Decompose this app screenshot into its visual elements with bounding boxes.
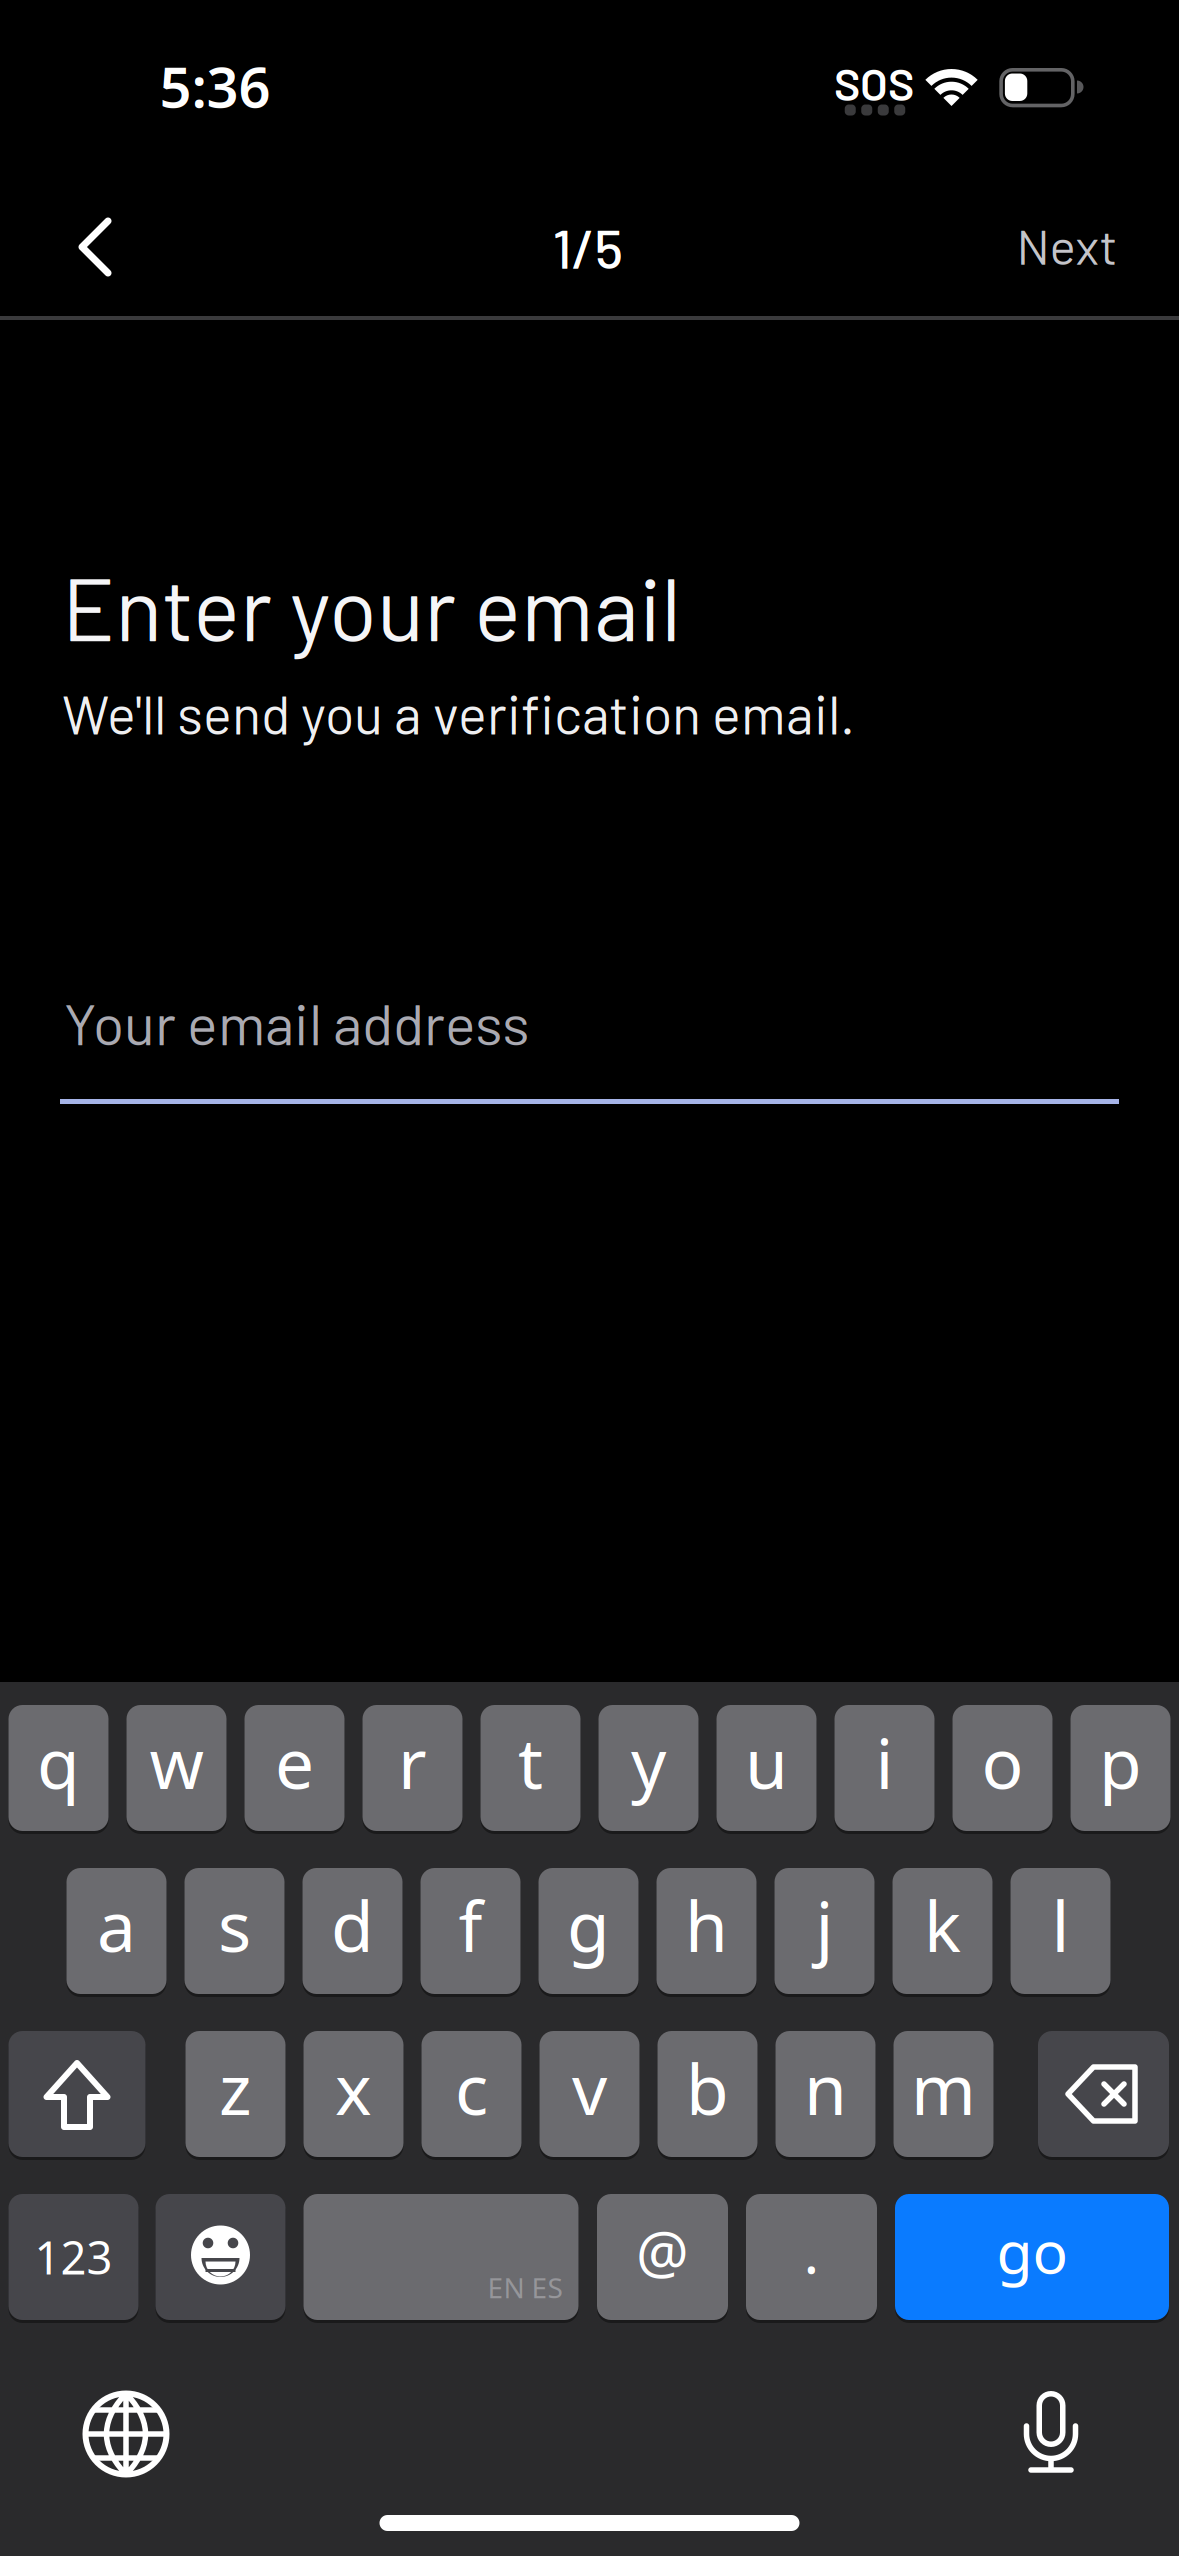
staticText: c	[455, 2042, 488, 2134]
staticText: g	[567, 1879, 610, 1971]
button[interactable]: q	[8, 1705, 108, 1831]
button[interactable]: s	[184, 1868, 284, 1994]
staticText: p	[1099, 1716, 1142, 1808]
staticText: b	[686, 2042, 729, 2134]
staticText: z	[219, 2042, 252, 2134]
staticText: 5:36	[159, 49, 270, 123]
staticText: Your email address	[64, 988, 530, 1057]
button[interactable]: Your email address	[60, 975, 1119, 1111]
staticText: x	[335, 2042, 372, 2134]
staticText: SOS	[834, 56, 914, 110]
button[interactable]: Next keyboard	[66, 2374, 186, 2494]
staticText: Next	[1016, 215, 1117, 275]
button[interactable]: u	[716, 1705, 816, 1831]
button[interactable]: o	[952, 1705, 1052, 1831]
staticText: y	[631, 1716, 666, 1808]
button[interactable]: f	[420, 1868, 520, 1994]
staticText: n	[804, 2042, 847, 2134]
staticText: m	[911, 2042, 976, 2134]
button[interactable]: n	[775, 2031, 875, 2157]
button[interactable]: z	[185, 2031, 285, 2157]
staticText: w	[149, 1716, 203, 1808]
button[interactable]: k	[892, 1868, 992, 1994]
button[interactable]: r	[362, 1705, 462, 1831]
button[interactable]: @	[597, 2194, 728, 2320]
staticText: a	[97, 1879, 136, 1971]
button[interactable]: Back	[44, 194, 184, 300]
staticText: 123	[34, 2227, 112, 2287]
button[interactable]: b	[657, 2031, 757, 2157]
button[interactable]: Dictate	[991, 2374, 1111, 2494]
button[interactable]: l	[1010, 1868, 1110, 1994]
staticText: f	[458, 1879, 482, 1971]
button[interactable]: Shift	[8, 2031, 145, 2157]
button[interactable]: w	[126, 1705, 226, 1831]
button[interactable]: y	[598, 1705, 698, 1831]
staticText: r	[398, 1716, 427, 1808]
staticText: i	[875, 1716, 893, 1808]
staticText: @	[636, 2212, 689, 2290]
button[interactable]: Space	[303, 2194, 578, 2320]
button[interactable]: d	[302, 1868, 402, 1994]
staticText: t	[518, 1716, 543, 1808]
staticText: d	[331, 1879, 374, 1971]
staticText: h	[685, 1879, 728, 1971]
button[interactable]: c	[421, 2031, 521, 2157]
staticText: o	[981, 1716, 1023, 1808]
button[interactable]: i	[834, 1705, 934, 1831]
button[interactable]: g	[538, 1868, 638, 1994]
staticText: go	[996, 2212, 1067, 2290]
staticText: e	[275, 1716, 314, 1808]
button[interactable]: m	[893, 2031, 993, 2157]
staticText: j	[815, 1879, 833, 1971]
staticText: s	[218, 1879, 251, 1971]
staticText: q	[37, 1716, 80, 1808]
button[interactable]: 123	[8, 2194, 138, 2320]
staticText: .	[803, 2212, 819, 2290]
button[interactable]: go	[895, 2194, 1169, 2320]
button[interactable]: j	[774, 1868, 874, 1994]
button[interactable]: t	[480, 1705, 580, 1831]
staticText: v	[572, 2042, 607, 2134]
staticText: Enter your email	[62, 553, 681, 659]
button[interactable]: x	[303, 2031, 403, 2157]
button[interactable]: Emoji	[155, 2194, 285, 2320]
staticText: We'll send you a verification email.	[62, 681, 855, 745]
staticText: 1/5	[552, 214, 623, 280]
button[interactable]: e	[244, 1705, 344, 1831]
staticText: l	[1051, 1879, 1069, 1971]
button[interactable]: Delete	[1038, 2031, 1169, 2157]
button[interactable]: p	[1070, 1705, 1170, 1831]
button[interactable]: a	[66, 1868, 166, 1994]
staticText: EN ES	[487, 2269, 562, 2306]
staticText: u	[745, 1716, 788, 1808]
button[interactable]: v	[539, 2031, 639, 2157]
button[interactable]: h	[656, 1868, 756, 1994]
staticText: k	[924, 1879, 961, 1971]
button[interactable]: Next	[982, 190, 1152, 300]
button[interactable]: .	[746, 2194, 877, 2320]
